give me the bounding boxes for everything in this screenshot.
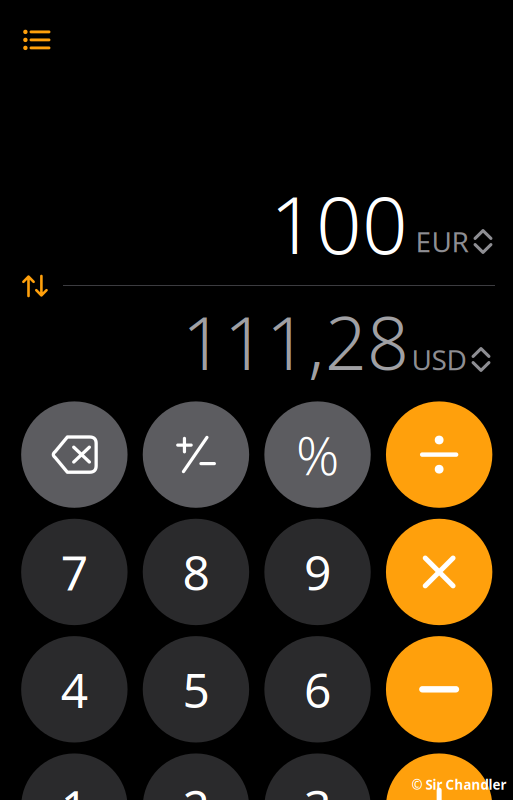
button[interactable]: Plus minus (141, 401, 251, 508)
button[interactable]: Currency list (14, 20, 58, 60)
staticText: 9 (304, 540, 331, 604)
staticText: 8 (182, 540, 209, 604)
button[interactable]: Plus (384, 753, 494, 800)
staticText: 111,28 (182, 293, 409, 390)
staticText: 2 (182, 775, 209, 800)
button[interactable]: 5 (141, 636, 251, 742)
button[interactable]: Minus (384, 636, 494, 742)
button[interactable]: 2 (141, 753, 251, 800)
button[interactable]: 7 (19, 519, 130, 625)
staticText: 6 (304, 657, 331, 721)
staticText: 1 (61, 775, 88, 800)
staticText: © Sir Chandler (411, 776, 506, 793)
button[interactable]: USD (406, 342, 496, 376)
staticText: % (296, 419, 339, 490)
button[interactable]: Multiply (384, 519, 494, 625)
staticText: EUR (415, 223, 468, 260)
staticText: 7 (61, 540, 88, 604)
button[interactable]: Percent (262, 401, 373, 508)
button[interactable]: EUR (409, 224, 499, 258)
button[interactable]: 1 (19, 753, 130, 800)
button[interactable]: 4 (19, 636, 130, 742)
staticText: 5 (182, 657, 209, 721)
button[interactable]: 6 (262, 636, 373, 742)
staticText: USD (411, 341, 466, 378)
button[interactable]: Delete (19, 401, 130, 508)
staticText: 100 (270, 170, 408, 276)
staticText: 3 (304, 775, 331, 800)
button[interactable]: 8 (141, 519, 251, 625)
button[interactable]: Divide (384, 401, 494, 508)
button[interactable]: Swap currencies (13, 266, 57, 306)
button[interactable]: 9 (262, 519, 373, 625)
staticText: 4 (61, 657, 88, 721)
button[interactable]: 3 (262, 753, 373, 800)
